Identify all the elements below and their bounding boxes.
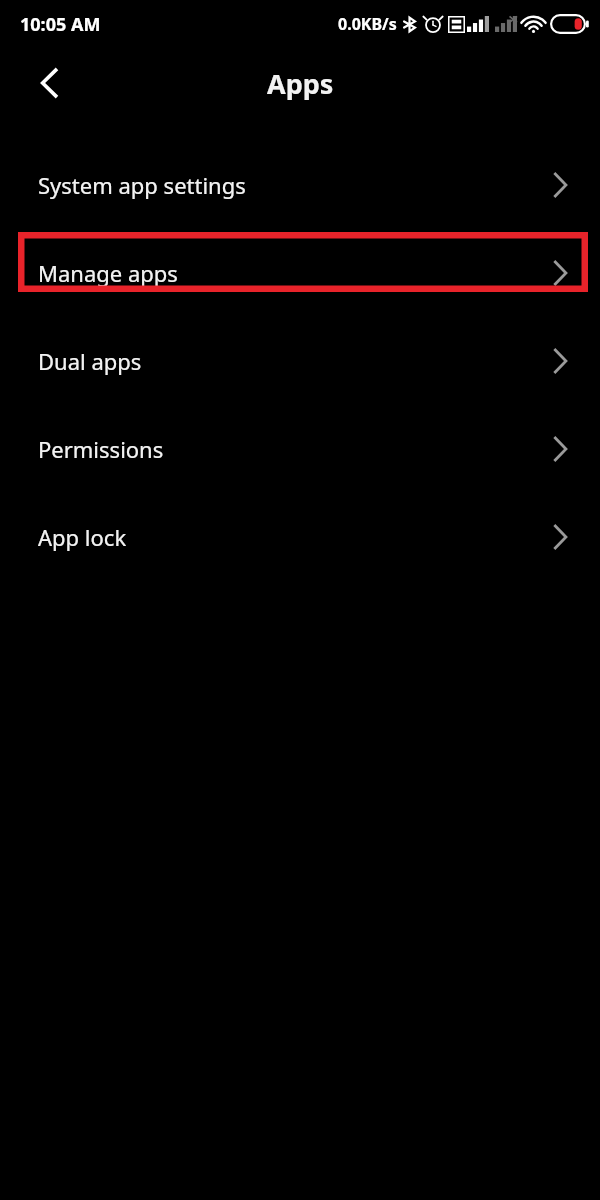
button[interactable]: Permissions [0,419,600,479]
button[interactable]: Back [24,58,74,108]
button[interactable]: Dual apps [0,331,600,391]
staticText: App lock [38,522,127,552]
button[interactable]: System app settings [0,155,600,215]
button[interactable]: App lock [0,507,600,567]
staticText: Dual apps [38,346,142,376]
staticText: System app settings [38,170,246,200]
staticText: 10:05 AM [20,12,101,37]
staticText: Permissions [38,434,164,464]
staticText: 0.0KB/s [338,13,397,35]
staticText: Manage apps [38,258,178,288]
staticText: Apps [267,65,334,102]
button[interactable]: Manage apps [0,243,600,303]
